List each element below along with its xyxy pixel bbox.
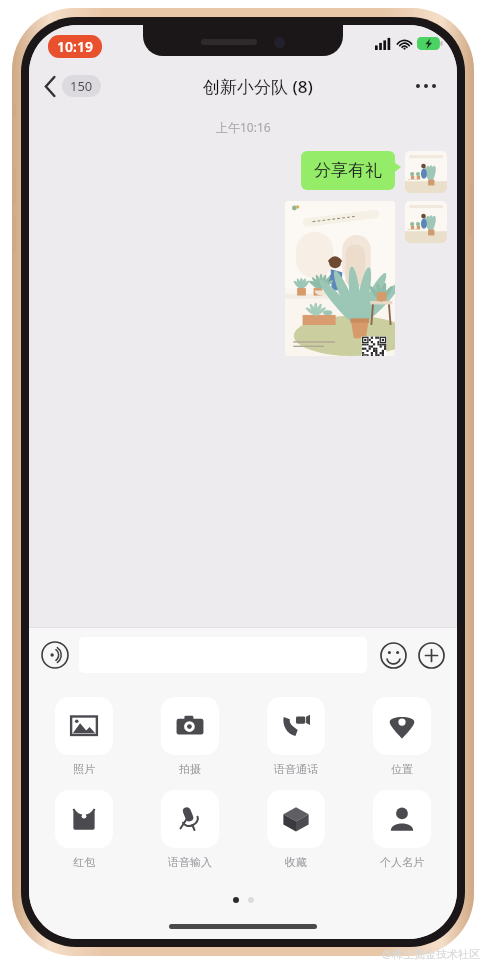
staticText: 个人名片 (380, 855, 424, 869)
button[interactable]: 更多功能 (415, 639, 447, 671)
staticText: 语音输入 (168, 855, 212, 869)
button[interactable]: 拍摄 (149, 697, 231, 776)
staticText: 语音通话 (274, 762, 318, 776)
button[interactable]: 红包 (43, 790, 125, 869)
staticText: 拍摄 (179, 762, 201, 776)
button[interactable]: 语音通话 (255, 697, 337, 776)
staticText: 创新小分队 (8) (203, 75, 313, 98)
staticText: @稀土掘金技术社区 (382, 946, 480, 961)
button[interactable]: 语音 (39, 639, 71, 671)
button[interactable]: 个人名片 (361, 790, 443, 869)
button[interactable]: 头像 (405, 151, 447, 193)
staticText: 分享有礼 (314, 160, 382, 181)
staticText: 10:19 (57, 37, 93, 56)
button[interactable]: 返回 (39, 71, 107, 101)
staticText: 红包 (73, 855, 95, 869)
button[interactable]: 表情 (377, 639, 409, 671)
staticText: 上午10:16 (216, 119, 271, 135)
staticText: 收藏 (285, 855, 307, 869)
staticText: 150 (70, 77, 93, 95)
button[interactable]: 收藏 (255, 790, 337, 869)
button[interactable]: 头像 (405, 201, 447, 243)
button[interactable]: 语音输入 (149, 790, 231, 869)
button[interactable]: 位置 (361, 697, 443, 776)
button[interactable]: 更多 (409, 69, 443, 103)
button[interactable]: 照片 (43, 697, 125, 776)
staticText: 位置 (391, 762, 413, 776)
staticText: 照片 (73, 762, 95, 776)
button[interactable]: 分享有礼 (301, 151, 395, 190)
button[interactable]: 分享图片 (285, 201, 395, 356)
